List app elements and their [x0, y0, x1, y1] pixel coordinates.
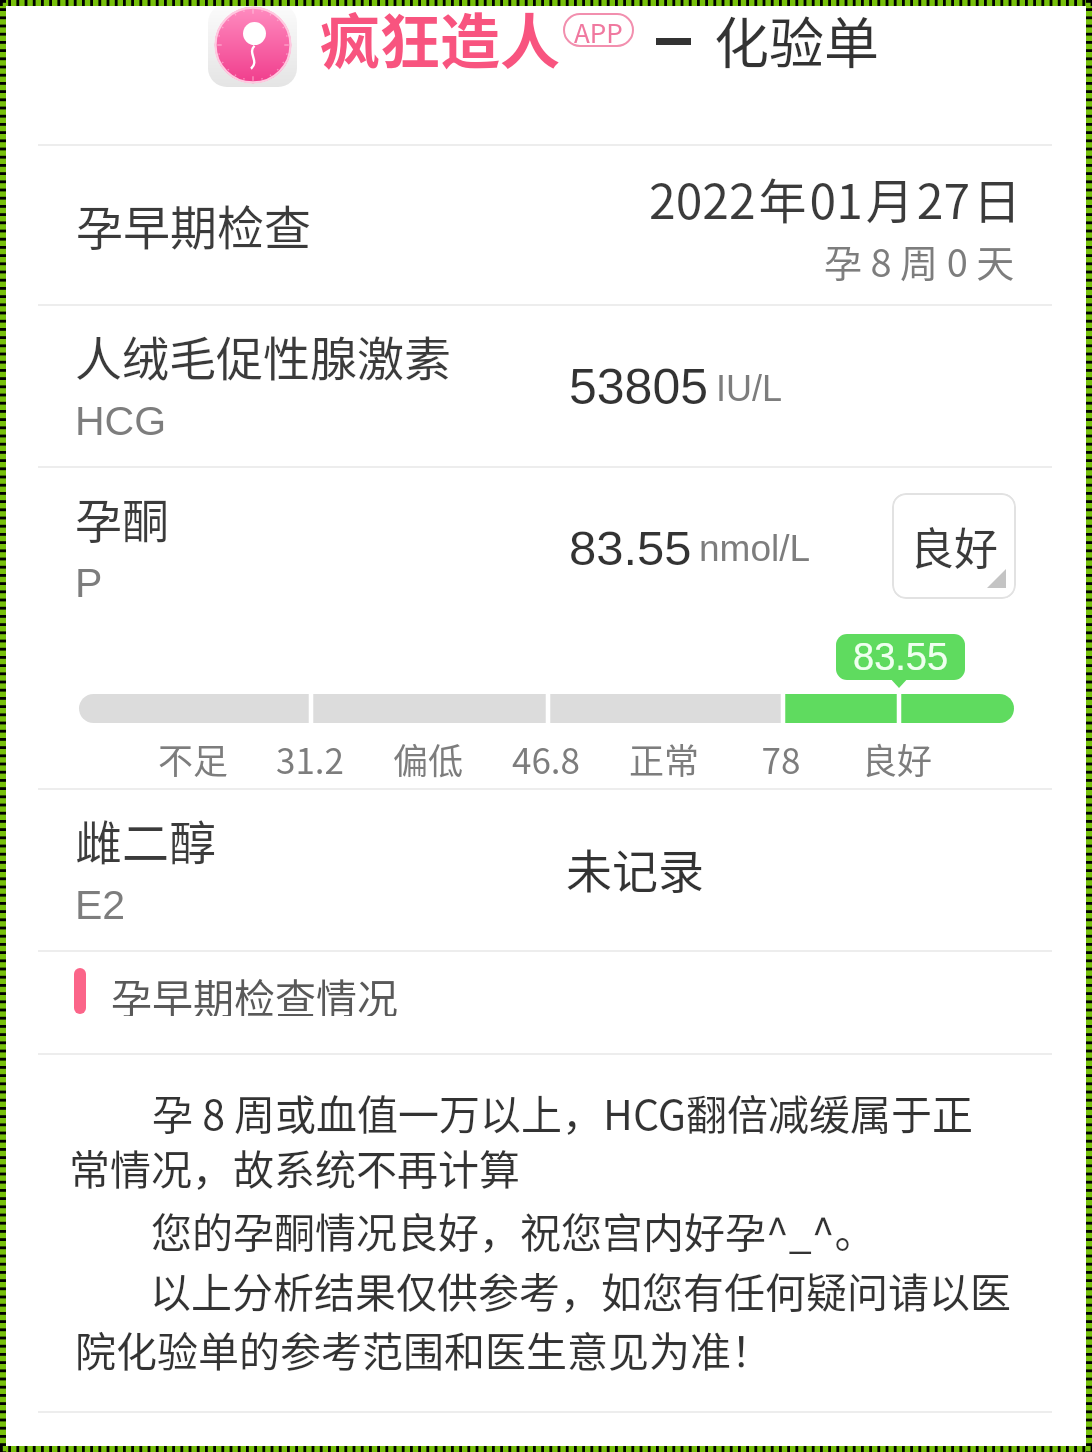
- staticText: 正常: [574, 733, 754, 784]
- staticText: 53805: [569, 359, 709, 415]
- staticText: 常情况，故系统不再计算: [69, 1137, 520, 1196]
- staticText: APP: [574, 13, 623, 47]
- staticText: 78: [691, 733, 871, 784]
- staticText: 人绒毛促性腺激素: [75, 321, 451, 389]
- staticText: 偏低: [338, 733, 518, 784]
- staticText: 良好: [807, 733, 987, 784]
- staticText: 孕早期检查情况: [111, 966, 398, 1016]
- button[interactable]: APP: [563, 13, 634, 47]
- staticText: 孕 8 周或血值一万以上，HCG翻倍减缓属于正: [152, 1082, 974, 1141]
- staticText: E2: [75, 882, 126, 928]
- staticText: 未记录: [566, 835, 704, 902]
- other: 疯狂造人 App icon: [207, 2, 298, 88]
- staticText: 您的孕酮情况良好，祝您宫内好孕^_^。: [151, 1200, 876, 1259]
- staticText: nmol/L: [699, 528, 811, 569]
- staticText: 孕酮: [75, 483, 169, 551]
- staticText: 83.55: [853, 636, 949, 678]
- staticText: 2022 年 01 月 27 日: [649, 163, 1022, 233]
- staticText: 孕 8 周 0 天: [824, 233, 1015, 288]
- staticText: 疯狂造人: [320, 0, 560, 81]
- staticText: 83.55: [569, 521, 692, 576]
- staticText: 31.2: [220, 733, 400, 784]
- staticText: 化验单: [714, 0, 880, 79]
- staticText: 不足: [103, 733, 283, 784]
- staticText: P: [75, 560, 103, 606]
- staticText: 良好: [910, 514, 998, 578]
- staticText: 以上分析结果仅供参考，如您有任何疑问请以医: [150, 1260, 1011, 1319]
- staticText: 院化验单的参考范围和医生意见为准！: [75, 1319, 772, 1378]
- button[interactable]: 孕早期检查情况: [74, 966, 398, 1016]
- button[interactable]: 良好: [892, 493, 1016, 599]
- staticText: 46.8: [456, 733, 636, 784]
- staticText: 雌二醇: [75, 805, 216, 873]
- staticText: HCG: [75, 398, 167, 444]
- staticText: 孕早期检查: [76, 190, 311, 258]
- staticText: IU/L: [716, 368, 783, 408]
